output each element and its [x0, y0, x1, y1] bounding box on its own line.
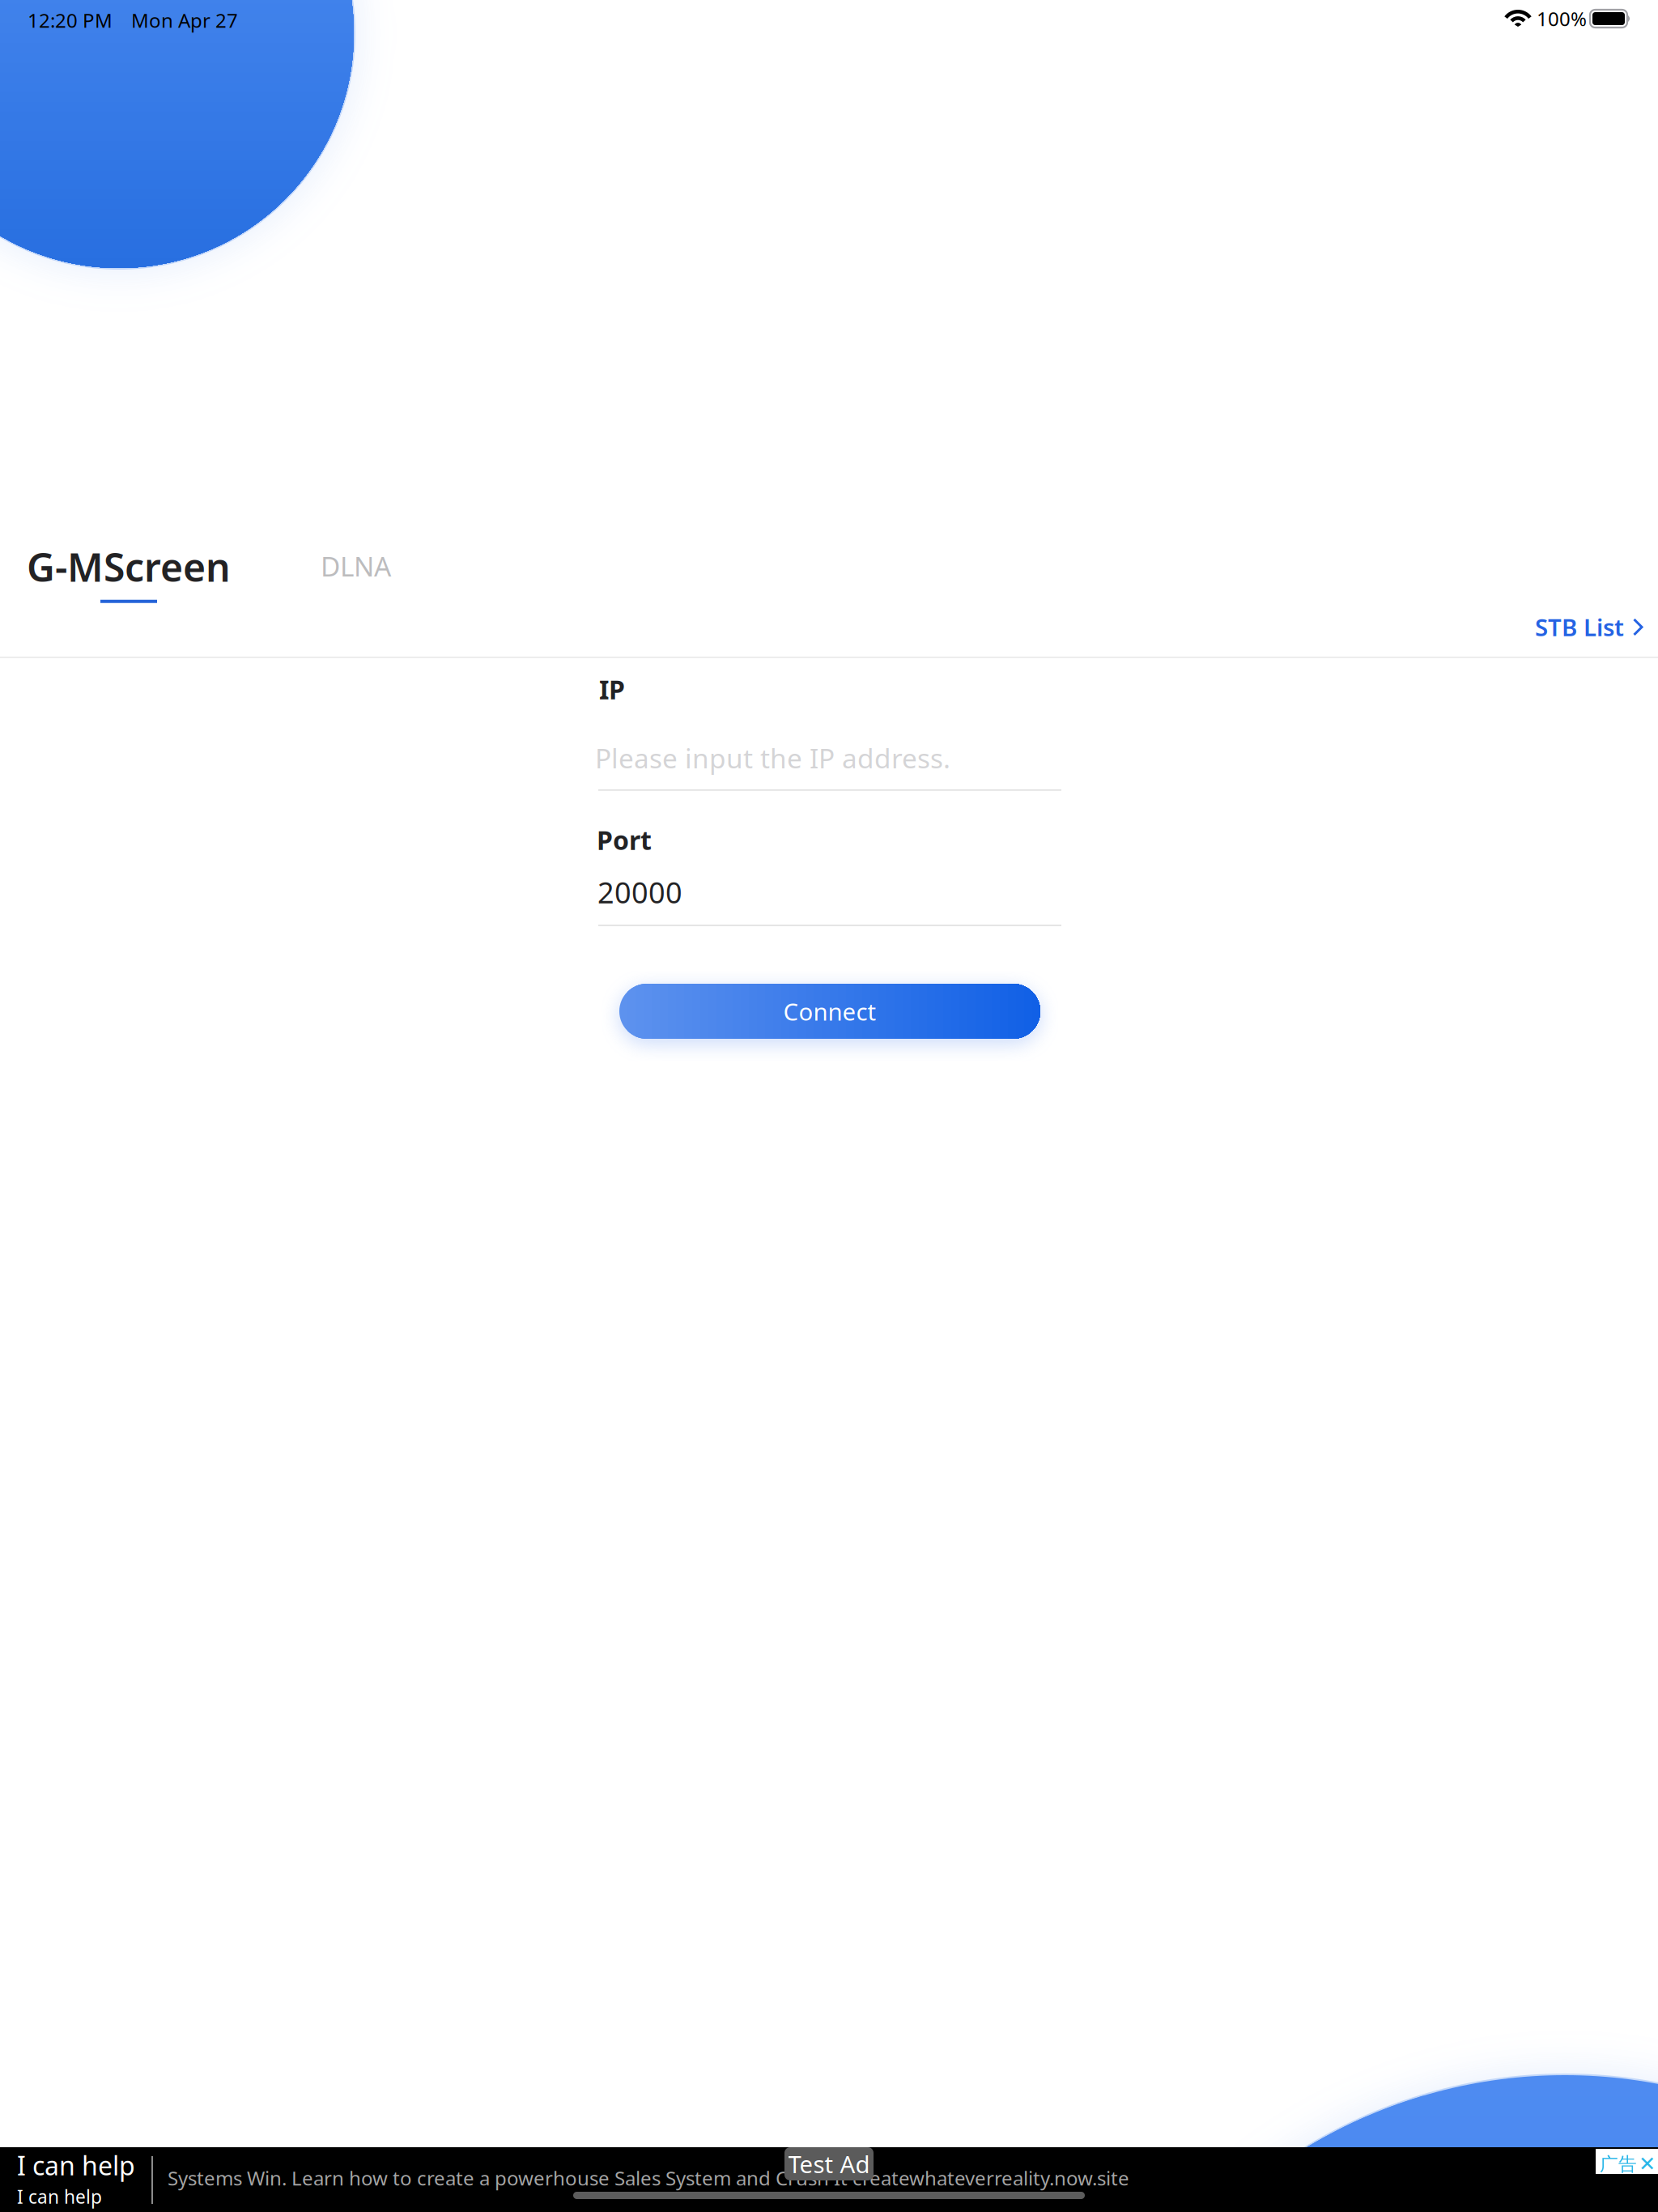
button[interactable]: DLNA	[309, 540, 402, 592]
staticText: Port	[597, 823, 652, 857]
button[interactable]: I can help	[0, 2147, 1658, 2212]
button[interactable]: Close ad	[1596, 2149, 1658, 2174]
staticText: Please input the IP address.	[595, 740, 950, 776]
staticText: 100%	[1537, 6, 1587, 31]
staticText: I can help	[17, 2184, 102, 2209]
button[interactable]: STB List	[1522, 600, 1656, 654]
staticText: 12:20 PM	[28, 7, 113, 33]
staticText: I can help	[17, 2148, 135, 2182]
staticText: 20000	[597, 873, 682, 912]
staticText: Connect	[783, 995, 876, 1027]
staticText: IP	[599, 672, 625, 706]
button[interactable]: Connect	[619, 984, 1040, 1039]
staticText: Mon Apr 27	[131, 7, 238, 33]
staticText: ✕	[1639, 2152, 1656, 2175]
staticText: 广告	[1600, 2153, 1637, 2175]
staticText: Test Ad	[788, 2148, 870, 2180]
staticText: STB List	[1535, 611, 1624, 643]
staticText: Systems Win. Learn how to create a power…	[168, 2165, 1129, 2191]
staticText: DLNA	[321, 548, 391, 584]
staticText: G-MScreen	[27, 541, 231, 592]
button[interactable]: G-MScreen	[25, 541, 232, 603]
